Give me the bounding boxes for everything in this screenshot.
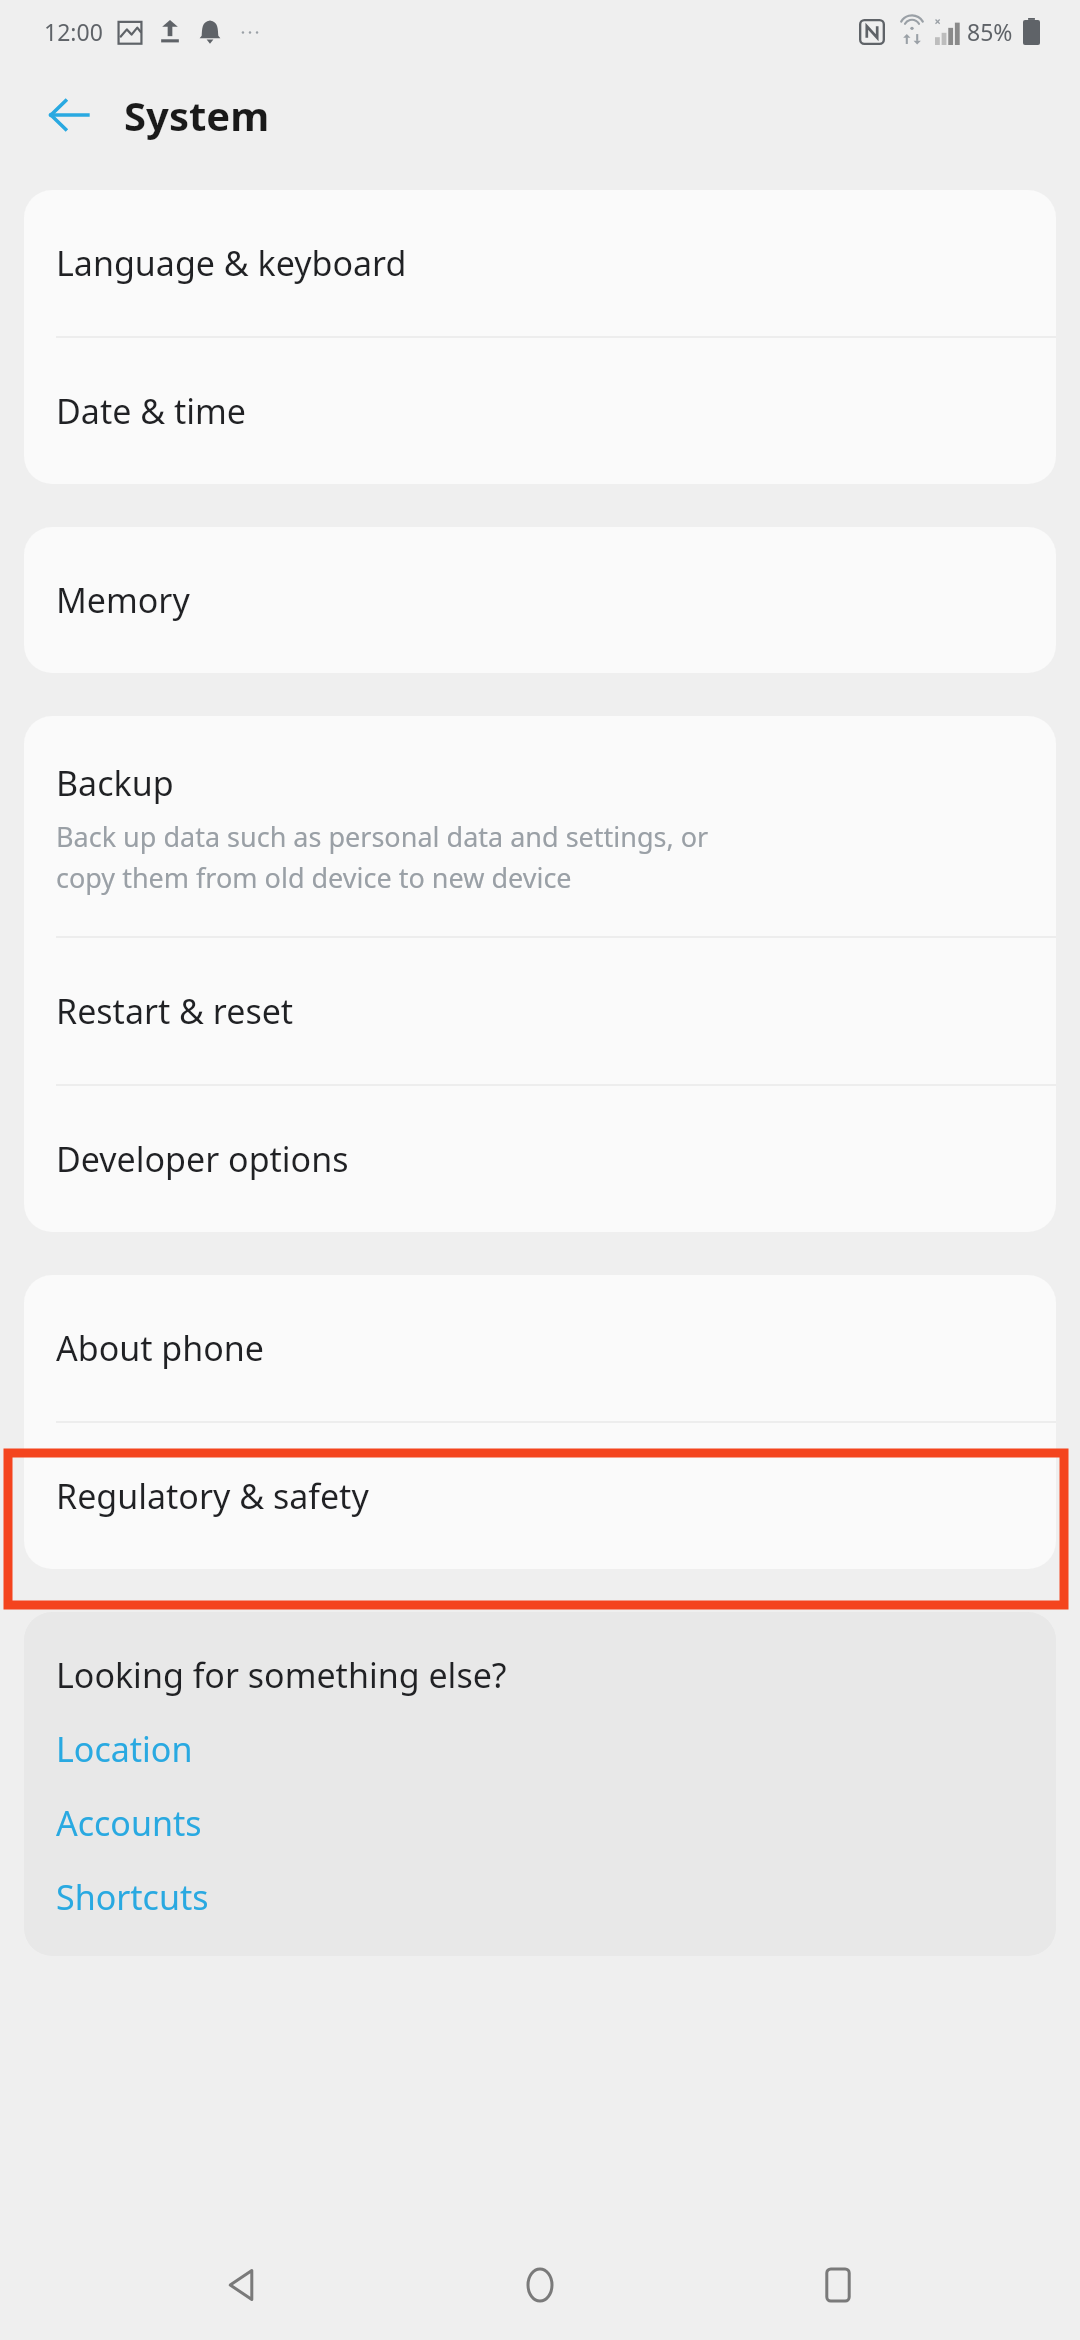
button[interactable]: Restart & reset <box>24 938 1056 1084</box>
button[interactable]: Back <box>188 2230 298 2340</box>
staticText: Looking for something else? <box>56 1652 507 1698</box>
staticText: Regulatory & safety <box>56 1473 369 1519</box>
button[interactable]: Backup <box>24 716 1056 936</box>
button[interactable]: Memory <box>24 527 1056 673</box>
staticText: 85% <box>967 16 1013 47</box>
button[interactable]: Home <box>485 2230 595 2340</box>
staticText: About phone <box>56 1325 265 1371</box>
staticText: System <box>124 88 270 142</box>
staticText: Back up data such as personal data and s… <box>56 818 709 896</box>
button[interactable]: Recent apps <box>783 2230 893 2340</box>
staticText: Backup <box>56 760 174 806</box>
button[interactable]: Location <box>56 1726 193 1772</box>
button[interactable]: Back <box>36 82 102 148</box>
staticText: Restart & reset <box>56 988 294 1034</box>
staticText: Location <box>56 1726 193 1772</box>
button[interactable]: Date & time <box>24 338 1056 484</box>
button[interactable]: Regulatory & safety <box>24 1423 1056 1569</box>
button[interactable]: Developer options <box>24 1086 1056 1232</box>
staticText: Shortcuts <box>56 1874 209 1920</box>
button[interactable]: Language & keyboard <box>24 190 1056 336</box>
staticText: Memory <box>56 577 190 623</box>
button[interactable]: About phone <box>24 1275 1056 1421</box>
staticText: Accounts <box>56 1800 202 1846</box>
staticText: 12:00 <box>44 16 103 47</box>
staticText: Language & keyboard <box>56 240 407 286</box>
staticText: Developer options <box>56 1136 349 1182</box>
button[interactable]: Shortcuts <box>56 1874 209 1920</box>
button[interactable]: Accounts <box>56 1800 202 1846</box>
staticText: Date & time <box>56 388 246 434</box>
